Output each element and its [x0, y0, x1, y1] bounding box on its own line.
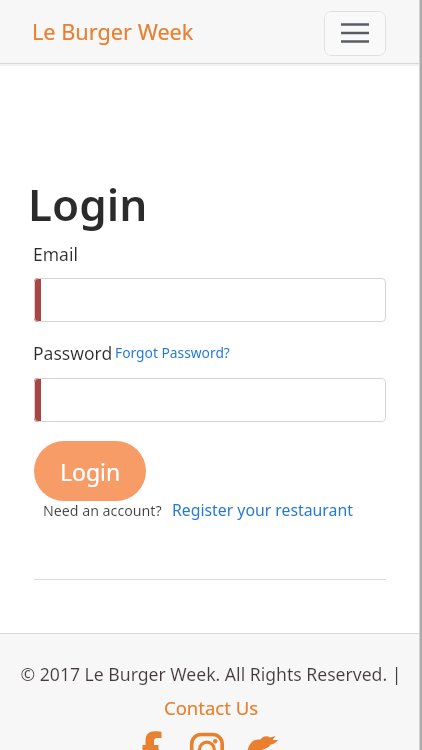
staticText: © 2017 Le Burger Week. All Rights Reserv…: [0, 662, 422, 686]
button[interactable]: Login: [34, 441, 146, 501]
button[interactable]: Contact Us: [0, 695, 422, 720]
button[interactable]: [34, 278, 386, 322]
staticText: Email: [33, 242, 78, 266]
button[interactable]: [34, 378, 386, 422]
button[interactable]: Register your restaurant: [172, 499, 353, 521]
staticText: Need an account?: [43, 501, 162, 520]
staticText: Le Burger Week: [32, 17, 194, 47]
staticText: Login: [60, 456, 121, 487]
button[interactable]: [324, 11, 386, 56]
staticText: Password: [33, 341, 113, 365]
button[interactable]: Forgot Password?: [115, 343, 230, 362]
staticText: Login: [28, 174, 148, 234]
